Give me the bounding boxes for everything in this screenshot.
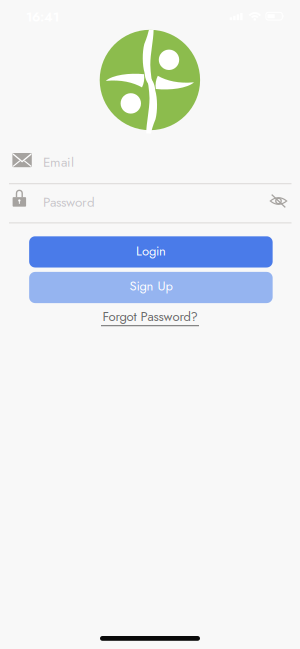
button[interactable]: Login [29,236,273,267]
staticText: Sign Up [129,277,172,295]
button[interactable]: Show password [266,191,290,211]
staticText: Password [43,192,95,212]
staticText: Email [43,152,74,172]
staticText: Login [136,242,166,260]
button[interactable]: Sign Up [29,272,273,303]
button[interactable]: Forgot Password? [95,308,205,328]
staticText: Forgot Password? [102,307,197,326]
button[interactable]: Email [9,146,291,184]
button[interactable]: Password [9,186,291,224]
